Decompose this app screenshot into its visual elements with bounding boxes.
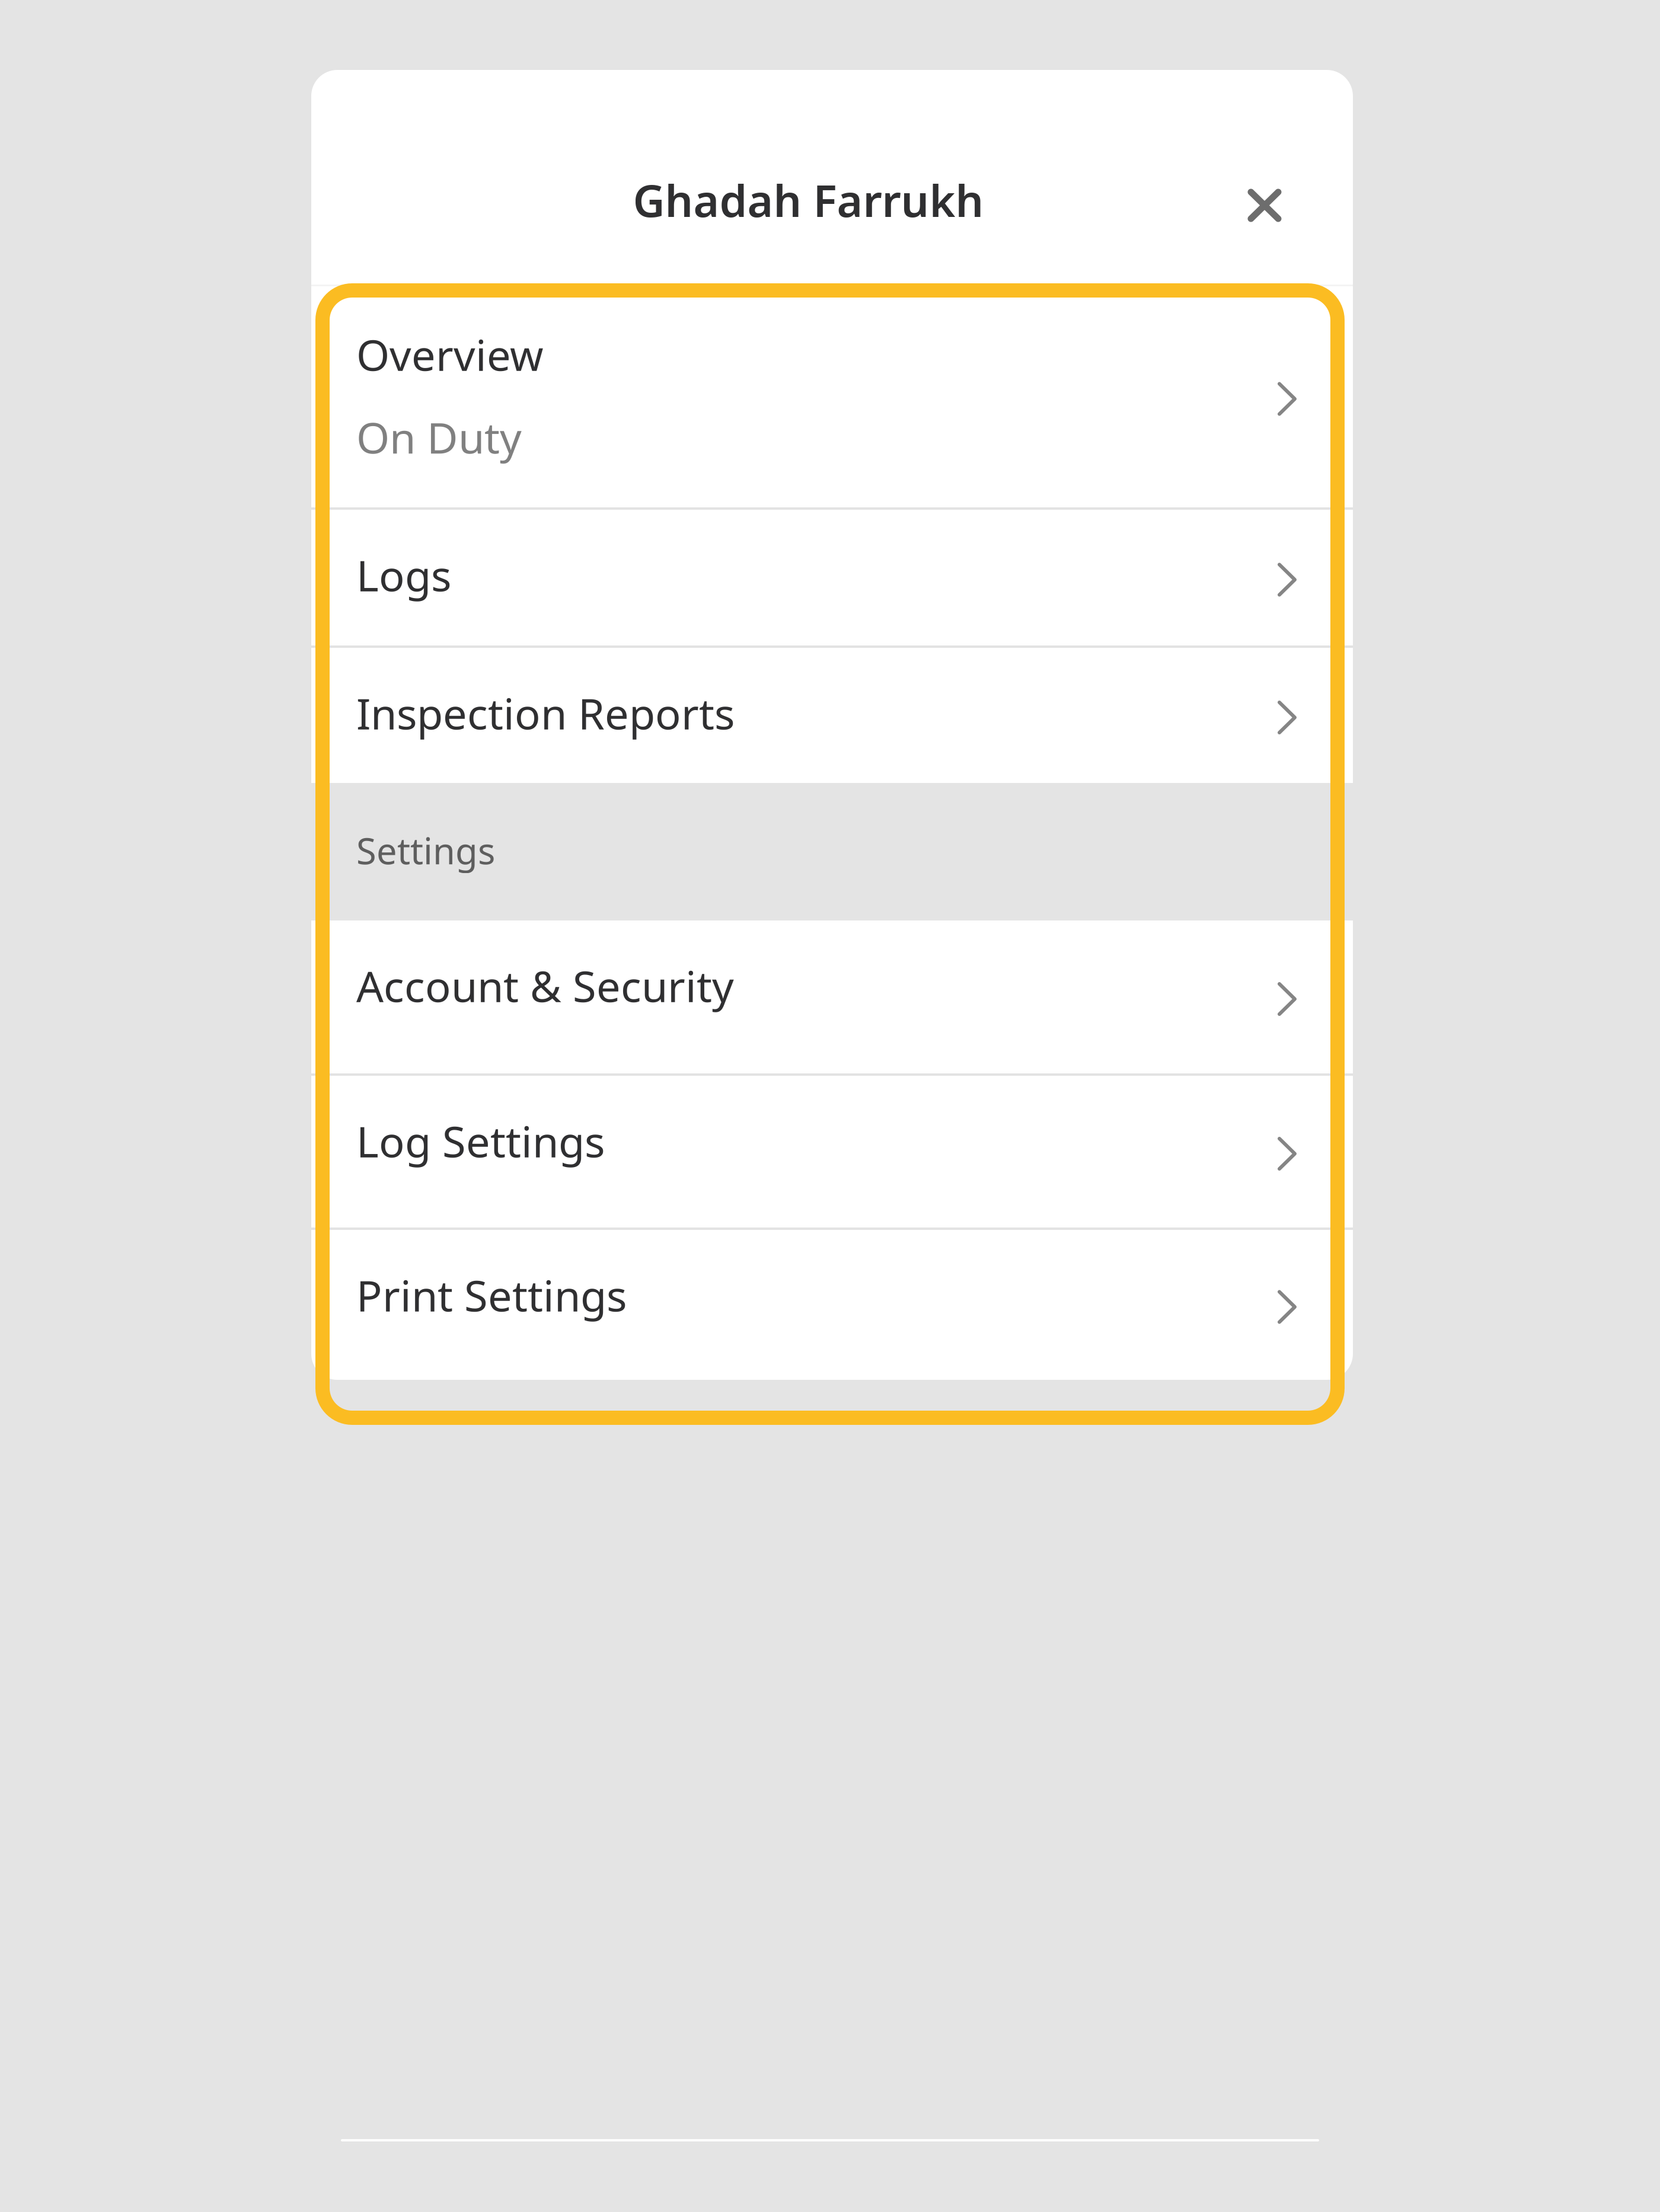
staticText: Overview — [356, 326, 544, 383]
staticText: Logs — [356, 546, 451, 603]
staticText: Account & Security — [356, 957, 734, 1014]
button[interactable]: Inspection Reports — [311, 648, 1353, 783]
button[interactable]: Overview — [311, 286, 1353, 507]
button[interactable]: Print Settings — [311, 1230, 1353, 1380]
staticText: Settings — [356, 826, 495, 874]
staticText: Log Settings — [356, 1113, 605, 1169]
staticText: Inspection Reports — [356, 685, 735, 741]
button[interactable]: Account & Security — [311, 920, 1353, 1073]
button[interactable]: Log Settings — [311, 1076, 1353, 1228]
staticText: Print Settings — [356, 1267, 627, 1323]
button[interactable]: Close — [1226, 167, 1353, 244]
button[interactable]: Logs — [311, 510, 1353, 645]
staticText: On Duty — [356, 409, 522, 465]
staticText: Ghadah Farrukh — [633, 170, 984, 229]
